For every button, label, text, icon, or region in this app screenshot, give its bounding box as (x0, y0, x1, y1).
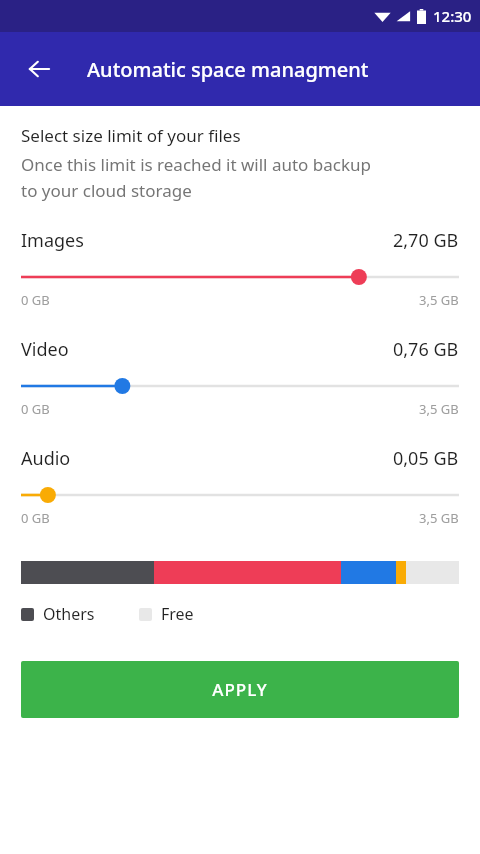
staticText: 3,5 GB (419, 400, 459, 418)
staticText: Once this limit is reached it will auto … (21, 153, 371, 202)
button[interactable] (21, 376, 459, 396)
staticText: 0,05 GB (393, 446, 459, 471)
staticText: 0 GB (21, 291, 50, 309)
staticText: 2,70 GB (393, 228, 459, 253)
button[interactable]: Free (139, 603, 194, 625)
staticText: 3,5 GB (419, 509, 459, 527)
staticText: 12:30 (433, 6, 472, 26)
button[interactable] (21, 267, 459, 287)
staticText: 3,5 GB (419, 291, 459, 309)
button[interactable] (21, 485, 459, 505)
button[interactable]: Back (15, 45, 63, 93)
staticText: Images (21, 228, 84, 253)
staticText: Free (161, 603, 194, 625)
staticText: 0,76 GB (393, 337, 459, 362)
staticText: Audio (21, 446, 71, 471)
staticText: Automatic space managment (87, 56, 369, 83)
staticText: Select size limit of your files (21, 124, 241, 147)
staticText: 0 GB (21, 509, 50, 527)
staticText: Video (21, 337, 69, 362)
staticText: 0 GB (21, 400, 50, 418)
staticText: Others (43, 603, 95, 625)
staticText: APPLY (212, 678, 268, 701)
button[interactable]: Others (21, 603, 95, 625)
button[interactable]: APPLY (21, 661, 459, 718)
